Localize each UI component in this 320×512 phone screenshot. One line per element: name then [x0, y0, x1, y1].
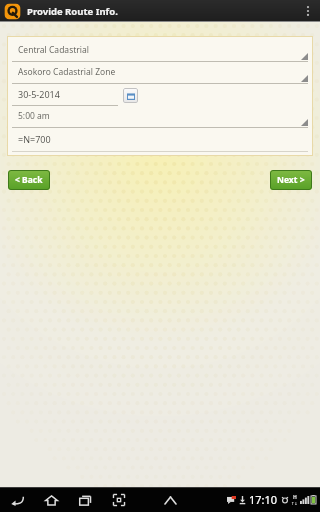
button[interactable]: < Back: [8, 170, 50, 190]
button[interactable]: Recent apps: [75, 490, 95, 510]
staticText: 17:10: [249, 492, 278, 507]
button[interactable]: 5:00 am: [12, 106, 308, 128]
staticText: 5:00 am: [18, 110, 50, 122]
staticText: =N=700: [18, 133, 51, 145]
staticText: 30-5-2014: [18, 88, 60, 100]
button[interactable]: Asokoro Cadastrial Zone: [12, 62, 308, 84]
button[interactable]: 30-5-2014: [12, 84, 118, 106]
button[interactable]: Home: [41, 490, 61, 510]
button[interactable]: Hide keyboard: [161, 491, 179, 509]
staticText: ↑↓: [291, 501, 298, 506]
staticText: Central Cadastrial: [18, 44, 89, 56]
button[interactable]: =N=700: [12, 128, 308, 152]
staticText: Next >: [277, 174, 305, 186]
staticText: Asokoro Cadastrial Zone: [18, 66, 116, 78]
staticText: < Back: [15, 174, 43, 186]
button[interactable]: Back: [7, 490, 27, 510]
button[interactable]: Screenshot: [109, 490, 129, 510]
button[interactable]: More options: [300, 0, 316, 22]
button[interactable]: App icon: [4, 3, 21, 20]
staticText: H: [293, 494, 297, 501]
button[interactable]: Next >: [270, 170, 312, 190]
staticText: Provide Route Info.: [27, 5, 118, 18]
button[interactable]: Central Cadastrial: [12, 40, 308, 62]
button[interactable]: Pick date: [123, 88, 138, 103]
